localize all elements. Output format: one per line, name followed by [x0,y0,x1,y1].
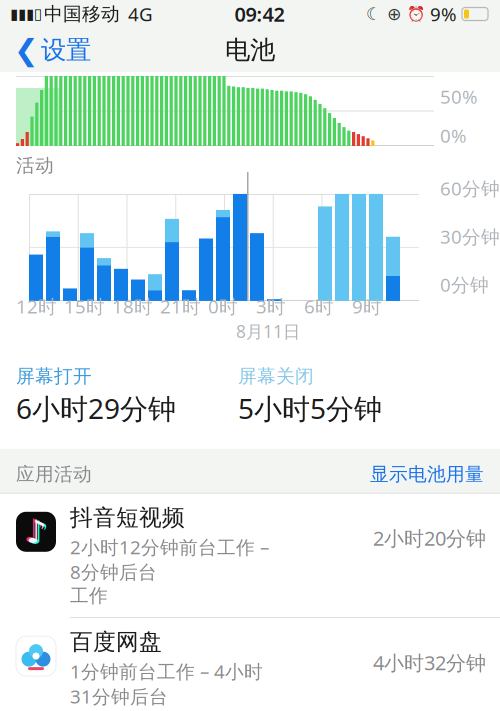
staticText: 0时 [208,294,238,319]
button[interactable]: 显示电池用量 [370,463,484,486]
staticText: 5小时5分钟 [238,390,382,427]
staticText: 应用活动 [16,463,92,486]
staticText: ▮▮▮▯ [10,6,42,22]
staticText: 3时 [256,294,286,319]
staticText: 30分钟 [440,224,500,249]
staticText: 8月11日 [236,320,300,343]
staticText: 屏幕打开 [16,365,92,388]
staticText: 0分钟 [440,272,489,297]
button[interactable]: ❮ [0,27,91,73]
staticText: 6小时29分钟 [16,390,176,427]
staticText: ❮ [14,33,39,67]
staticText: 抖音短视频 [70,504,185,532]
staticText: 12时 [16,294,57,319]
staticText: 50% [440,84,478,109]
button[interactable]: 百度网盘 [0,618,500,711]
staticText: 9% [430,2,457,26]
staticText: 百度网盘 [70,628,162,656]
staticText: ⊕ [387,4,402,24]
staticText: 1分钟前台工作 – 4小时31分钟后台 工作 [70,659,263,711]
staticText: 2小时12分钟前台工作 – 8分钟后台 工作 [70,535,269,607]
button[interactable]: ♪ [0,494,500,618]
staticText: 18时 [112,294,153,319]
staticText: 9时 [352,294,382,319]
staticText: 中国移动 [44,2,120,25]
staticText: 60分钟 [440,176,500,201]
staticText: 屏幕关闭 [238,365,314,388]
staticText: 活动 [16,154,54,177]
staticText: 6时 [304,294,334,319]
staticText: ♪ [28,515,48,551]
staticText: 设置 [41,34,91,65]
staticText: 0% [440,123,467,148]
staticText: ♪ [23,513,43,549]
staticText: 15时 [64,294,105,319]
staticText: 4小时32分钟 [373,649,486,676]
staticText: ⏰ [407,6,425,22]
staticText: 21时 [160,294,201,319]
staticText: 4G [128,2,153,26]
staticText: ♪ [26,514,46,550]
staticText: 电池 [225,34,275,65]
staticText: 显示电池用量 [370,463,484,486]
staticText: 2小时20分钟 [373,525,486,551]
staticText: 09:42 [234,1,284,27]
staticText: ☾ [366,4,382,24]
